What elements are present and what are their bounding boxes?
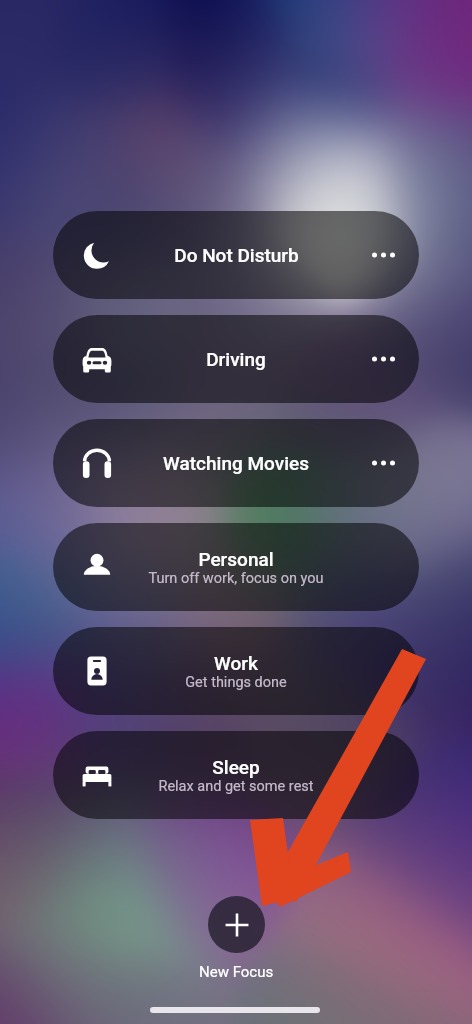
staticText: Sleep <box>212 756 260 778</box>
button[interactable]: Sleep <box>53 731 419 819</box>
staticText: Do Not Disturb <box>174 244 299 266</box>
button[interactable]: Work <box>53 627 419 715</box>
button[interactable]: More options <box>361 233 405 277</box>
staticText: Get things done <box>185 674 287 691</box>
staticText: Work <box>214 652 258 674</box>
button[interactable]: Watching Movies <box>53 419 419 507</box>
staticText: Personal <box>198 548 274 570</box>
button[interactable]: New Focus <box>208 896 265 953</box>
button[interactable]: Personal <box>53 523 419 611</box>
staticText: Watching Movies <box>163 452 309 474</box>
staticText: Turn off work, focus on you <box>148 570 324 587</box>
staticText: New Focus <box>199 963 274 981</box>
button[interactable]: Do Not Disturb <box>53 211 419 299</box>
staticText: Driving <box>206 348 266 370</box>
staticText: Relax and get some rest <box>158 778 314 795</box>
button[interactable]: More options <box>361 337 405 381</box>
button[interactable]: Driving <box>53 315 419 403</box>
button[interactable]: More options <box>361 441 405 485</box>
